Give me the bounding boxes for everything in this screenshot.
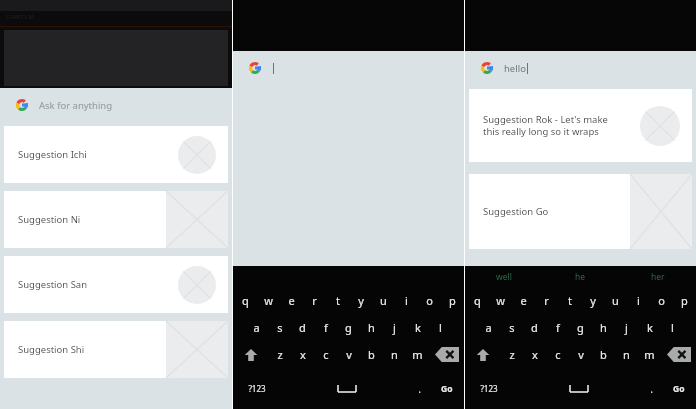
button[interactable]: c [314, 341, 337, 368]
button[interactable]: b [592, 341, 615, 368]
button[interactable]: k [638, 314, 661, 341]
button[interactable]: f [546, 314, 569, 341]
button[interactable]: q [465, 287, 489, 314]
staticText: d [299, 320, 306, 335]
staticText: . [650, 382, 653, 396]
staticText: j [393, 320, 396, 335]
button[interactable]: Suggestion San [4, 256, 228, 313]
staticText: Suggestion San [18, 278, 88, 291]
button[interactable]: e [512, 287, 535, 314]
button[interactable]: Suggestion Rok - Let's make this really … [469, 89, 692, 162]
staticText: he [575, 271, 586, 283]
button[interactable]: hello [465, 51, 696, 85]
button[interactable]: i [395, 287, 418, 314]
button[interactable]: her [619, 266, 696, 287]
button[interactable]: k [406, 314, 429, 341]
staticText: d [531, 320, 538, 335]
button[interactable]: m [406, 341, 429, 368]
staticText: n [391, 347, 398, 362]
button[interactable]: Suggestion Ichi [4, 126, 228, 183]
button[interactable]: c [546, 341, 569, 368]
button[interactable]: s [500, 314, 523, 341]
button[interactable]: y [581, 287, 604, 314]
button[interactable]: r [535, 287, 558, 314]
button[interactable]: w [257, 287, 280, 314]
button[interactable]: z [268, 341, 291, 368]
staticText: a [485, 320, 492, 335]
staticText: her [651, 271, 665, 283]
button[interactable]: a [245, 314, 268, 341]
button[interactable]: Shift [465, 341, 500, 368]
button[interactable]: o [418, 287, 441, 314]
staticText: l [671, 320, 674, 335]
button[interactable]: y [349, 287, 372, 314]
staticText: s [509, 320, 515, 335]
button[interactable]: n [383, 341, 406, 368]
button[interactable]: p [441, 287, 464, 314]
button[interactable]: t [558, 287, 581, 314]
staticText: v [346, 347, 352, 362]
staticText: y [358, 293, 364, 308]
button[interactable]: o [650, 287, 673, 314]
button[interactable]: Go [430, 368, 464, 409]
button[interactable]: g [337, 314, 360, 341]
button[interactable]: Space [547, 368, 611, 409]
staticText: p [449, 293, 456, 308]
button[interactable]: Suggestion Ni [4, 191, 228, 248]
button[interactable]: x [523, 341, 546, 368]
button[interactable]: u [372, 287, 395, 314]
button[interactable]: a [477, 314, 500, 341]
staticText: m [644, 347, 655, 362]
button[interactable]: r [303, 287, 326, 314]
button[interactable]: l [429, 314, 452, 341]
staticText: t [568, 293, 572, 308]
staticText: z [509, 347, 515, 362]
button[interactable]: h [592, 314, 615, 341]
button[interactable]: m [638, 341, 661, 368]
button[interactable]: Suggestion Go [469, 174, 692, 249]
staticText: well [496, 271, 512, 283]
button[interactable] [233, 51, 464, 85]
button[interactable]: Backspace [429, 341, 464, 368]
button[interactable]: u [604, 287, 627, 314]
button[interactable]: ?123 [233, 368, 281, 409]
button[interactable]: Go [662, 368, 696, 409]
button[interactable]: l [661, 314, 684, 341]
button[interactable]: b [360, 341, 383, 368]
button[interactable]: d [291, 314, 314, 341]
staticText: t [336, 293, 340, 308]
staticText: b [600, 347, 607, 362]
staticText: p [681, 293, 688, 308]
button[interactable]: s [268, 314, 291, 341]
staticText: h [368, 320, 375, 335]
button[interactable]: d [523, 314, 546, 341]
button[interactable]: z [500, 341, 523, 368]
button[interactable]: v [337, 341, 360, 368]
button[interactable]: h [360, 314, 383, 341]
button[interactable]: well [465, 266, 542, 287]
button[interactable]: Space [315, 368, 379, 409]
button[interactable]: v [569, 341, 592, 368]
button[interactable]: ?123 [465, 368, 513, 409]
button[interactable]: p [673, 287, 696, 314]
button[interactable]: i [627, 287, 650, 314]
button[interactable]: j [383, 314, 406, 341]
button[interactable]: Suggestion Shi [4, 321, 228, 378]
button[interactable]: w [489, 287, 512, 314]
button[interactable]: g [569, 314, 592, 341]
button[interactable]: he [542, 266, 619, 287]
button[interactable]: f [314, 314, 337, 341]
staticText: Suggestion Shi [18, 343, 85, 356]
button[interactable]: t [326, 287, 349, 314]
button[interactable]: Backspace [661, 341, 696, 368]
button[interactable]: e [280, 287, 303, 314]
button[interactable]: Ask for anything [0, 88, 232, 122]
button[interactable]: x [291, 341, 314, 368]
button[interactable]: j [615, 314, 638, 341]
button[interactable]: Shift [233, 341, 268, 368]
button[interactable]: q [233, 287, 257, 314]
button[interactable]: n [615, 341, 638, 368]
staticText: e [520, 293, 527, 308]
button[interactable]: . [409, 368, 430, 409]
button[interactable]: . [641, 368, 662, 409]
